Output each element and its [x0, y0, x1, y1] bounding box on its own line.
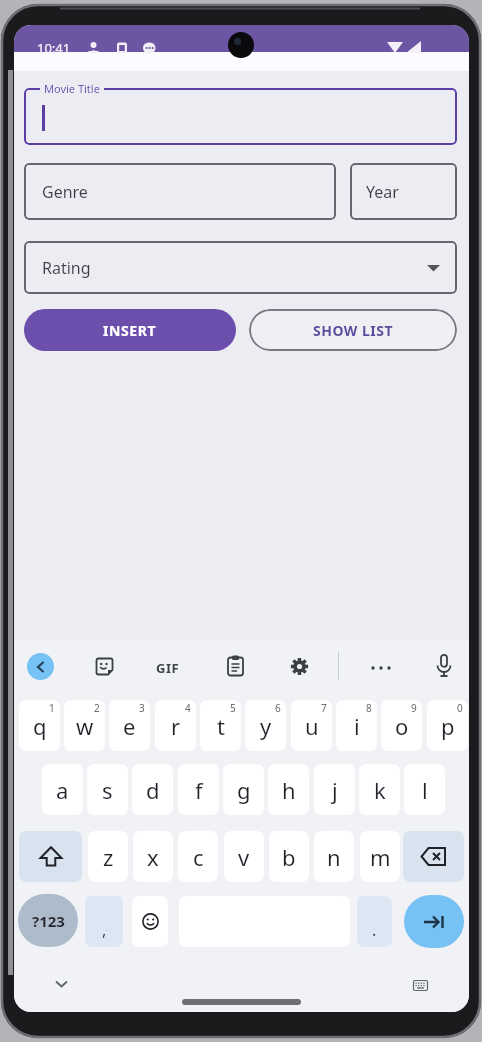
button[interactable]: ,	[85, 896, 123, 947]
staticText: 3	[139, 701, 145, 715]
staticText: Genre	[42, 181, 88, 203]
staticText: ?123	[32, 911, 65, 931]
button[interactable]: n	[314, 831, 354, 882]
staticText: m	[370, 842, 391, 872]
staticText: n	[327, 842, 341, 872]
staticText: z	[103, 842, 114, 872]
staticText: f	[195, 775, 203, 805]
button[interactable]: q	[19, 700, 60, 751]
staticText: k	[374, 775, 386, 805]
button[interactable]	[413, 980, 428, 991]
button[interactable]: y	[245, 700, 286, 751]
staticText: w	[76, 711, 94, 741]
button[interactable]: c	[178, 831, 218, 882]
button[interactable]	[132, 896, 168, 947]
button[interactable]: GIF	[156, 659, 180, 677]
button[interactable]	[404, 895, 464, 948]
button[interactable]	[436, 654, 452, 678]
button[interactable]: Genre	[24, 163, 336, 220]
button[interactable]: INSERT	[24, 309, 236, 351]
staticText: s	[102, 775, 113, 805]
staticText: .	[372, 919, 377, 941]
staticText: 7	[321, 701, 327, 715]
staticText: Rating	[42, 257, 91, 279]
staticText: d	[146, 775, 160, 805]
staticText: o	[395, 711, 409, 741]
button[interactable]: t	[200, 700, 241, 751]
staticText: GIF	[156, 659, 180, 677]
staticText: 5	[230, 701, 236, 715]
staticText: h	[282, 775, 296, 805]
staticText: INSERT	[103, 321, 157, 340]
staticText: x	[147, 842, 159, 872]
staticText: ,	[102, 919, 107, 941]
button[interactable]: g	[223, 764, 264, 815]
button[interactable]: v	[224, 831, 264, 882]
staticText: 6	[275, 701, 281, 715]
button[interactable]: s	[87, 764, 128, 815]
button[interactable]: l	[404, 764, 445, 815]
button[interactable]	[370, 665, 392, 671]
staticText: c	[193, 842, 204, 872]
staticText: v	[238, 842, 250, 872]
button[interactable]: Year	[350, 163, 457, 220]
button[interactable]	[227, 655, 244, 676]
button[interactable]: p	[427, 700, 468, 751]
button[interactable]: r	[155, 700, 196, 751]
staticText: l	[422, 775, 428, 805]
button[interactable]	[19, 831, 82, 882]
button[interactable]	[27, 653, 54, 680]
button[interactable]: i	[336, 700, 377, 751]
staticText: j	[332, 775, 338, 805]
button[interactable]: w	[64, 700, 105, 751]
staticText: r	[171, 711, 181, 741]
button[interactable]: d	[132, 764, 173, 815]
staticText: q	[33, 711, 47, 741]
button[interactable]: k	[359, 764, 400, 815]
staticText: g	[237, 775, 251, 805]
staticText: i	[354, 711, 360, 741]
staticText: b	[282, 842, 296, 872]
button[interactable]: ?123	[18, 894, 78, 947]
button[interactable]: m	[360, 831, 400, 882]
button[interactable]: j	[314, 764, 355, 815]
staticText: e	[123, 711, 136, 741]
staticText: SHOW LIST	[313, 321, 394, 340]
staticText: Year	[366, 181, 399, 203]
button[interactable]: u	[291, 700, 332, 751]
staticText: t	[217, 711, 225, 741]
button[interactable]: SHOW LIST	[249, 309, 457, 351]
button[interactable]: o	[381, 700, 422, 751]
button[interactable]: x	[133, 831, 173, 882]
button[interactable]: f	[178, 764, 219, 815]
button[interactable]	[95, 657, 114, 676]
button[interactable]	[24, 88, 457, 145]
button[interactable]: e	[109, 700, 150, 751]
button[interactable]: h	[268, 764, 309, 815]
button[interactable]: z	[88, 831, 128, 882]
staticText: 10:41	[37, 39, 71, 57]
button[interactable]	[403, 831, 464, 882]
staticText: p	[441, 711, 455, 741]
button[interactable]: .	[357, 896, 392, 947]
staticText: y	[260, 711, 272, 741]
button[interactable]: Rating	[24, 241, 457, 294]
button[interactable]: b	[269, 831, 309, 882]
staticText: 0	[457, 701, 463, 715]
button[interactable]: a	[42, 764, 83, 815]
staticText: u	[305, 711, 319, 741]
button[interactable]	[290, 657, 309, 676]
staticText: 2	[94, 701, 100, 715]
staticText: Movie Title	[44, 81, 100, 96]
staticText: 9	[411, 701, 417, 715]
staticText: a	[56, 775, 69, 805]
staticText: 1	[49, 701, 55, 715]
staticText: 8	[366, 701, 372, 715]
button[interactable]	[55, 980, 68, 988]
staticText: 4	[185, 701, 191, 715]
